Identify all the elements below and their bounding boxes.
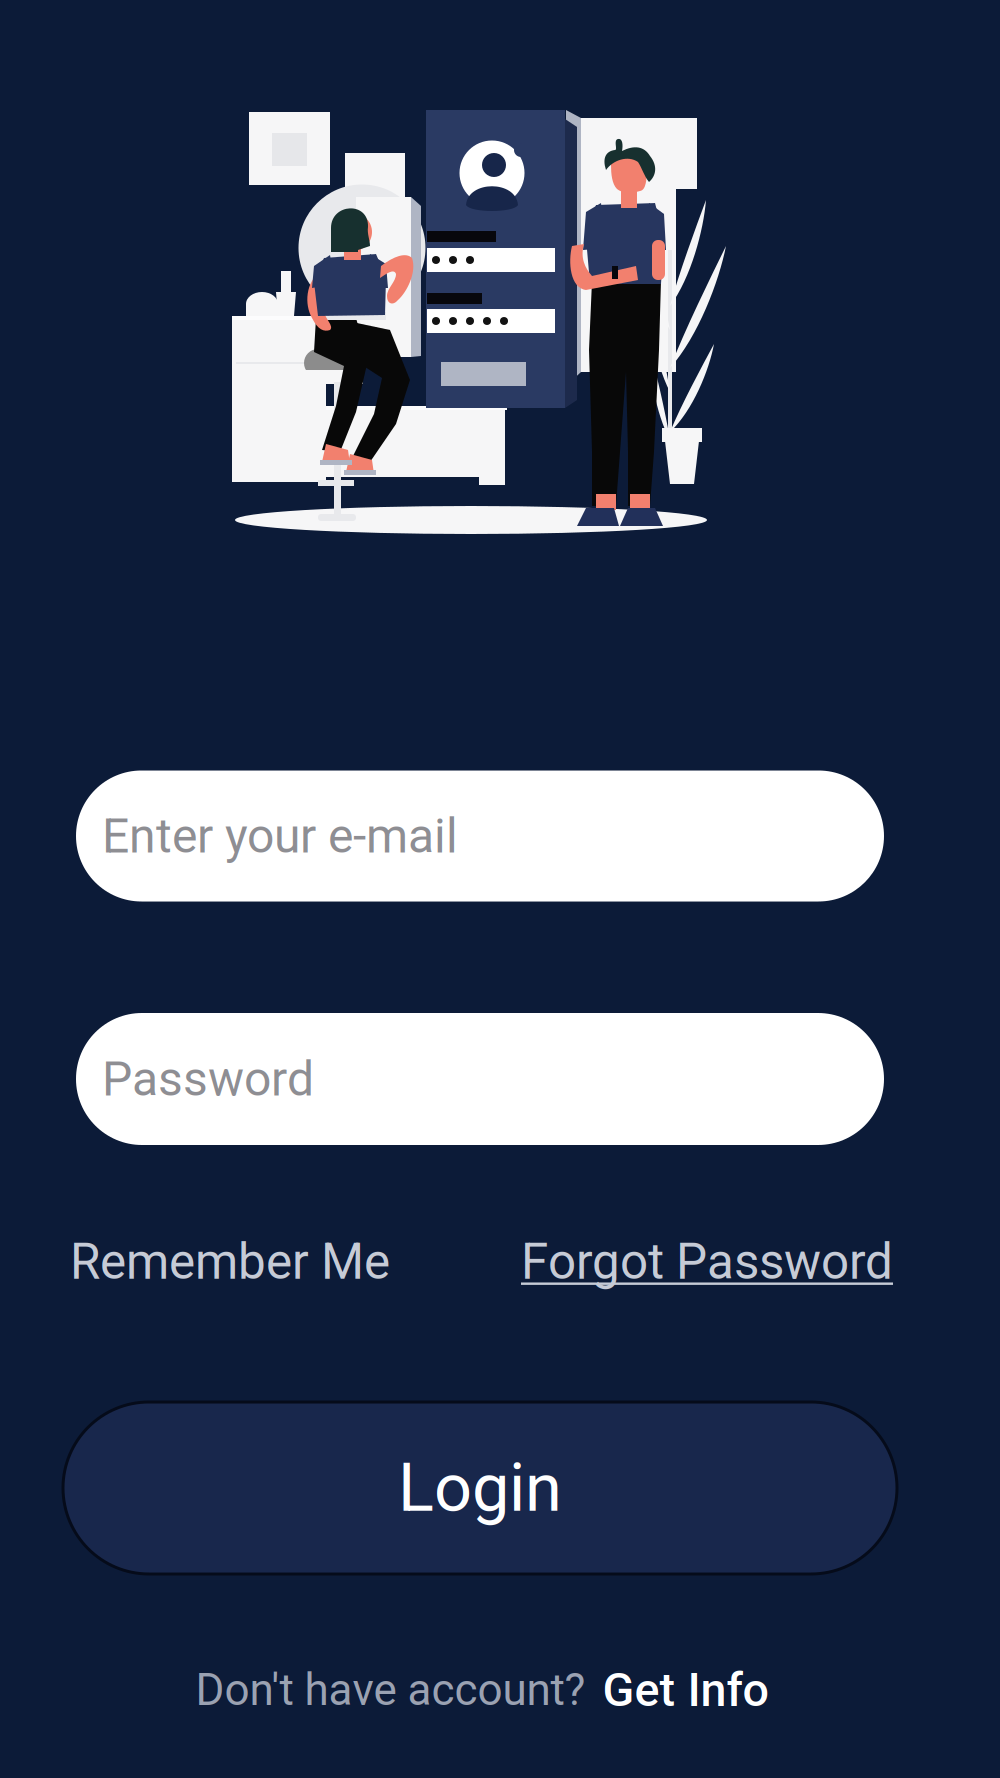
button[interactable]: Remember Me (70, 1233, 390, 1291)
staticText: Login (398, 1449, 562, 1527)
staticText: Don't have account? (195, 1664, 585, 1716)
staticText: Get Info (602, 1663, 768, 1717)
button[interactable]: Login (63, 1402, 897, 1574)
staticText: Enter your e-mail (102, 808, 458, 864)
staticText: Forgot Password (521, 1233, 893, 1291)
button[interactable]: Don't have account? (195, 1663, 768, 1717)
button[interactable]: Forgot Password (521, 1233, 893, 1291)
staticText: Remember Me (70, 1233, 390, 1291)
staticText: Password (102, 1051, 314, 1107)
